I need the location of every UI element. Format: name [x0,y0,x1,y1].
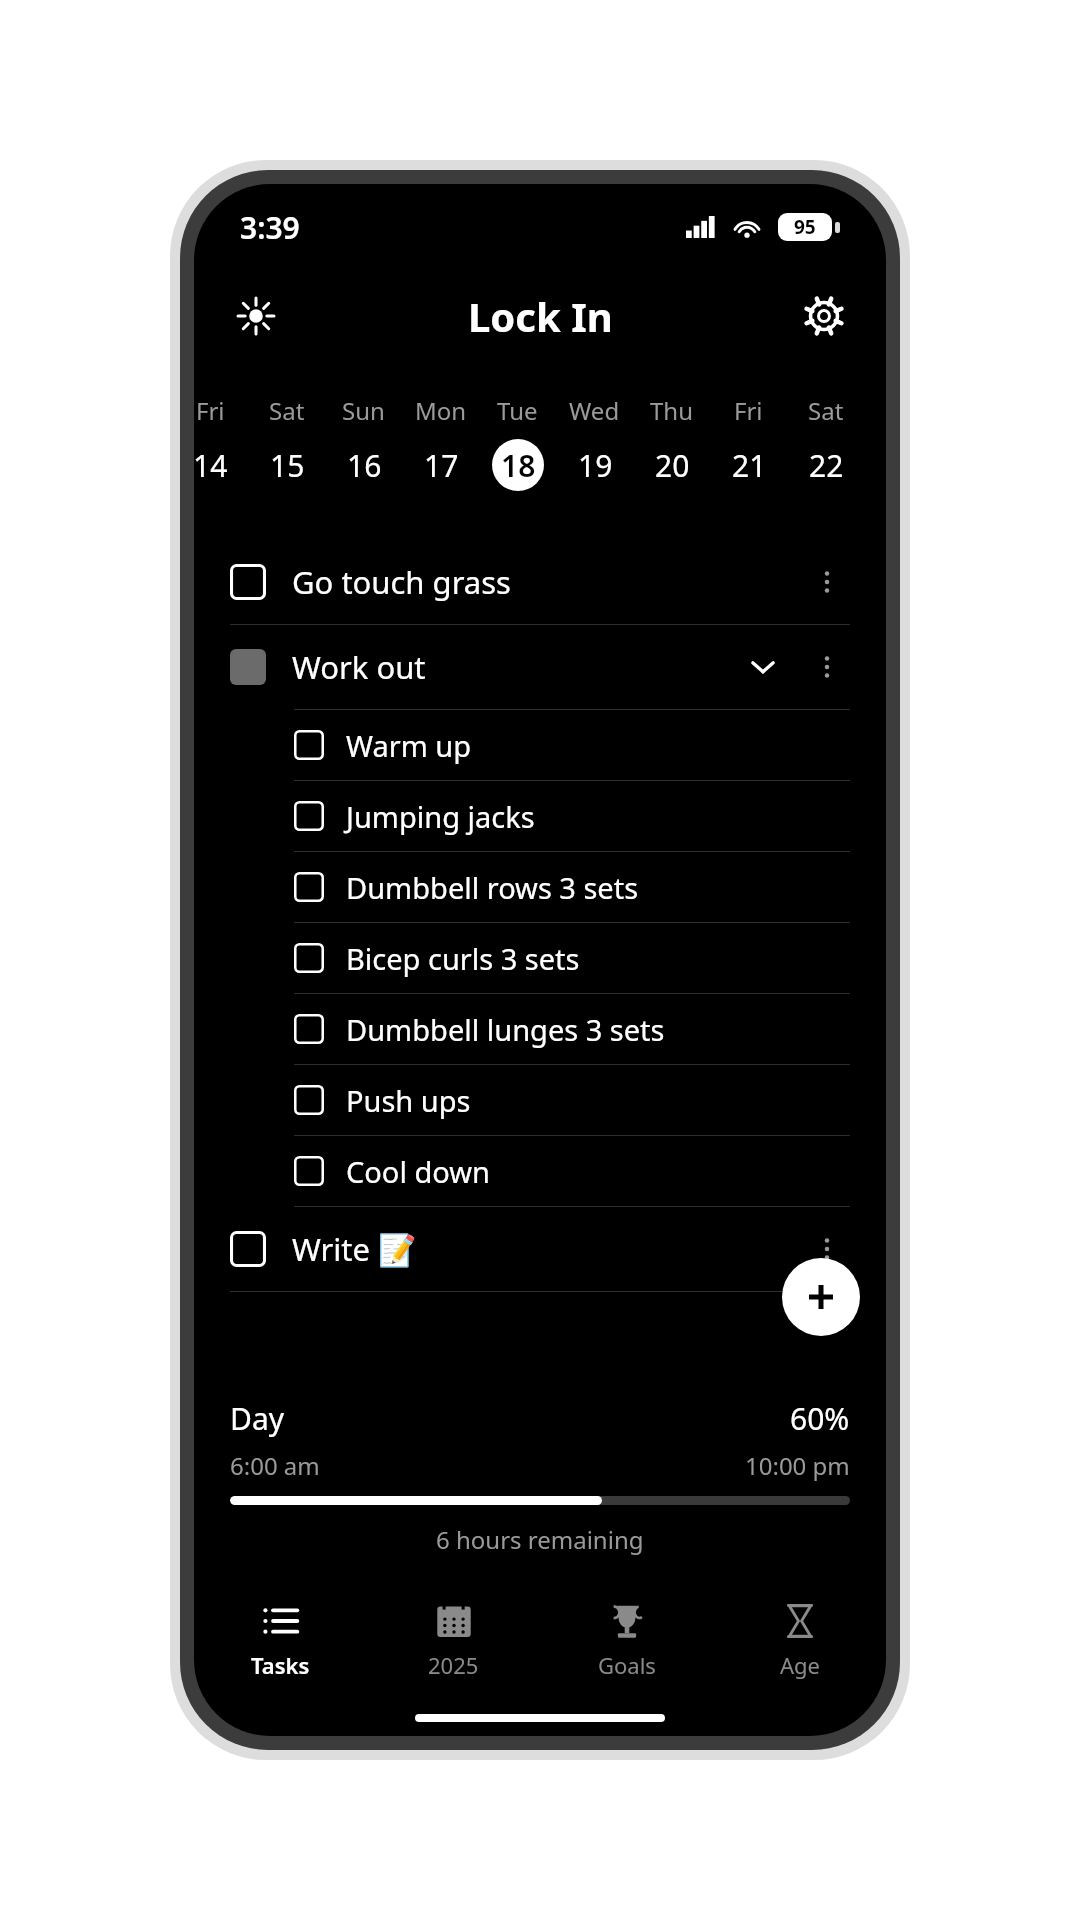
button[interactable]: Settings [792,284,856,348]
button[interactable]: Mark complete [230,1231,266,1267]
staticText: Goals [598,1650,656,1680]
staticText: Fri [734,394,763,427]
staticText: Lock In [468,289,613,343]
staticText: 15 [270,445,305,486]
staticText: Sat [808,394,844,427]
button[interactable]: Mark complete [194,923,886,993]
button[interactable]: Tue [479,388,556,496]
button[interactable]: Mark complete [194,852,886,922]
staticText: Go touch grass [292,561,511,603]
staticText: 18 [501,445,536,486]
button[interactable]: Tasks [194,1586,367,1696]
button[interactable]: More options [804,1226,850,1272]
staticText: Fri [196,394,225,427]
button[interactable]: Collapse [740,644,786,690]
button[interactable]: Mark complete [294,872,324,902]
button[interactable]: Mark complete [194,1065,886,1135]
button[interactable]: Sun [325,388,402,496]
staticText: 14 [194,445,228,486]
staticText: 2025 [428,1650,479,1680]
staticText: Day [230,1398,285,1439]
button[interactable]: Mark complete [294,1085,324,1115]
button[interactable]: 2025 [367,1586,540,1696]
button[interactable]: Add task [782,1258,860,1336]
staticText: 95 [794,214,816,240]
button[interactable]: Mark complete [194,1207,886,1291]
button[interactable]: Mark complete [230,564,266,600]
button[interactable]: Fri [710,388,787,496]
button[interactable]: Mark complete [294,730,324,760]
staticText: 19 [578,445,613,486]
staticText: Mon [415,394,467,427]
staticText: Jumping jacks [346,797,535,836]
staticText: Sun [342,394,385,427]
button[interactable]: Sat [248,388,325,496]
button[interactable]: Mark complete [194,994,886,1064]
button[interactable]: Mark complete [194,1136,886,1206]
staticText: 60% [790,1398,850,1439]
button[interactable]: Mark complete [194,710,886,780]
staticText: Age [780,1650,820,1680]
button[interactable]: More options [804,644,850,690]
staticText: Dumbbell lunges 3 sets [346,1010,665,1049]
staticText: Thu [650,394,694,427]
staticText: Sat [269,394,305,427]
staticText: 6 hours remaining [436,1523,644,1556]
staticText: Tasks [251,1650,310,1680]
staticText: Wed [569,394,620,427]
button[interactable]: Fri [194,388,248,496]
staticText: Cool down [346,1152,490,1191]
button[interactable]: Partially complete [230,649,266,685]
staticText: Work out [292,646,426,688]
button[interactable]: Wed [556,388,633,496]
button[interactable]: Mon [402,388,479,496]
button[interactable]: Goals [540,1586,713,1696]
button[interactable]: Partially complete [194,625,886,709]
staticText: 20 [655,445,690,486]
button[interactable]: Mark complete [294,943,324,973]
button[interactable]: Theme [224,284,288,348]
button[interactable]: Sat [787,388,864,496]
staticText: Dumbbell rows 3 sets [346,868,639,907]
staticText: Bicep curls 3 sets [346,939,580,978]
staticText: 16 [347,445,382,486]
button[interactable]: Mark complete [294,1014,324,1044]
button[interactable]: Age [713,1586,886,1696]
staticText: Tue [497,394,538,427]
staticText: 21 [732,445,767,486]
button[interactable]: Mark complete [294,1156,324,1186]
button[interactable]: More options [804,559,850,605]
staticText: Write 📝 [292,1228,417,1270]
button[interactable]: Mark complete [294,801,324,831]
button[interactable]: Thu [633,388,710,496]
staticText: 10:00 pm [745,1449,850,1482]
staticText: 22 [809,445,844,486]
staticText: 6:00 am [230,1449,320,1482]
button[interactable]: Mark complete [194,540,886,624]
staticText: 17 [424,445,459,486]
staticText: Push ups [346,1081,471,1120]
staticText: 3:39 [240,207,300,248]
button[interactable]: Mark complete [194,781,886,851]
staticText: Warm up [346,726,472,765]
